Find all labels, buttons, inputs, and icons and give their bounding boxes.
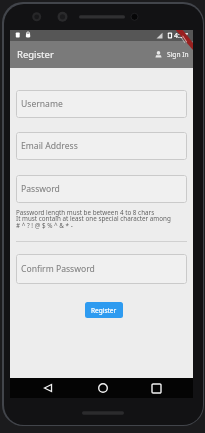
staticText: Password (21, 183, 60, 195)
button[interactable]: Password (16, 175, 187, 203)
button[interactable]: Home (93, 378, 113, 398)
staticText: Email Address (21, 140, 78, 152)
staticText: Confirm Password (21, 263, 95, 275)
staticText: # ^ ? ! @ $ % ^ & * - (16, 221, 73, 230)
button[interactable]: Username (16, 90, 187, 118)
staticText: Register (91, 306, 117, 315)
button[interactable]: Sign In (151, 41, 193, 68)
button[interactable]: Back (38, 378, 58, 398)
staticText: It must contain at least one special cha… (16, 214, 171, 223)
button[interactable]: Email Address (16, 132, 187, 160)
button[interactable]: Register (85, 302, 123, 318)
button[interactable]: Recents (146, 378, 166, 398)
staticText: 4:37 (174, 31, 188, 41)
staticText: Register (17, 48, 54, 61)
staticText: Sign In (167, 50, 189, 59)
staticText: Password length must be between 4 to 8 c… (16, 208, 155, 217)
staticText: Username (21, 98, 63, 110)
button[interactable]: Confirm Password (16, 254, 187, 284)
